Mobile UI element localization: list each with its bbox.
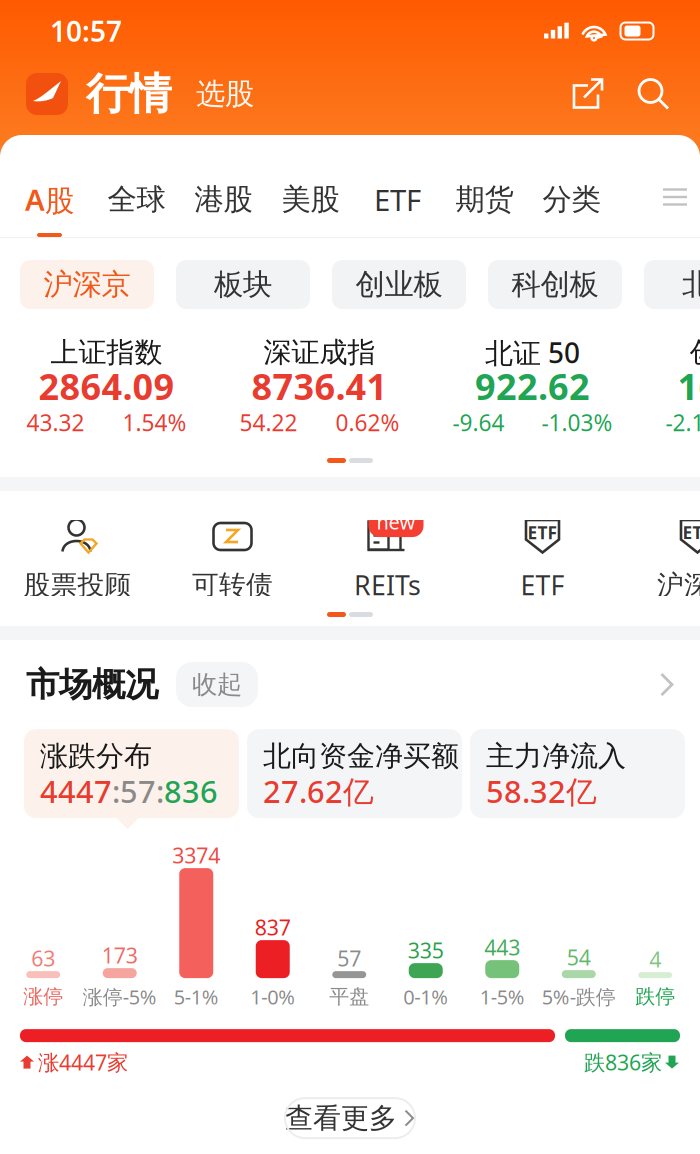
staticText: 5%-跌停	[542, 983, 616, 1010]
staticText: 1.54%	[122, 407, 186, 437]
staticText: 58.32亿	[486, 771, 597, 811]
staticText: 8736.41	[251, 362, 387, 410]
button[interactable]: 股票投顾	[0, 518, 155, 597]
staticText: 美股	[281, 181, 339, 217]
staticText: 创业板指	[689, 335, 700, 370]
staticText: 平盘	[329, 984, 369, 1009]
staticText: ETF	[520, 567, 564, 603]
staticText: 股票投顾	[23, 569, 131, 601]
button[interactable]: 深证成指	[213, 339, 426, 433]
staticText: 期货	[455, 181, 513, 217]
staticText: -1.03%	[541, 407, 612, 437]
staticText: ETF	[374, 180, 421, 219]
staticText: A股	[25, 180, 74, 219]
button[interactable]: new	[310, 518, 465, 597]
staticText: 922.62	[475, 362, 590, 410]
staticText: 0-1%	[403, 983, 448, 1010]
button[interactable]: 上证指数	[0, 339, 213, 433]
staticText: 4	[649, 945, 661, 973]
button[interactable]: 美股	[267, 157, 354, 237]
staticText: 3374	[172, 841, 220, 869]
staticText: 63	[31, 944, 55, 972]
staticText: 173	[102, 941, 138, 969]
button[interactable]: ETF	[465, 518, 620, 597]
staticText: 沪深股	[657, 569, 700, 601]
staticText: 27.62亿	[263, 771, 374, 811]
staticText: 5-1%	[174, 983, 219, 1010]
staticText: 上证指数	[50, 335, 162, 370]
button[interactable]: Search	[605, 77, 670, 110]
staticText: 跌836家	[584, 1048, 662, 1076]
staticText: 科创板	[511, 266, 598, 302]
button[interactable]: Share	[572, 77, 605, 110]
staticText: -9.64	[452, 407, 504, 437]
staticText: 836	[164, 771, 218, 811]
staticText: 2864.09	[38, 362, 174, 410]
staticText: 市场概况	[26, 664, 158, 705]
staticText: 1-5%	[480, 983, 525, 1010]
button[interactable]: 北交	[644, 260, 700, 309]
button[interactable]: 北证 50	[426, 339, 639, 433]
button[interactable]: ETF	[354, 157, 441, 237]
staticText: 涨跌分布	[40, 739, 152, 773]
staticText: REITs	[354, 567, 421, 603]
button[interactable]: 科创板	[488, 260, 622, 309]
button[interactable]: 港股	[180, 157, 267, 237]
staticText: 54	[567, 943, 591, 971]
button[interactable]: 北向资金净买额	[247, 729, 462, 818]
staticText: new	[376, 508, 415, 535]
staticText: 57	[337, 944, 361, 972]
staticText: 10:57	[50, 12, 122, 50]
staticText: 1629.87	[677, 362, 700, 410]
staticText: 收起	[192, 669, 242, 700]
staticText: 4447	[40, 771, 112, 811]
staticText: :57:	[112, 771, 164, 811]
button[interactable]: 分类	[528, 157, 615, 237]
button[interactable]: 期货	[441, 157, 528, 237]
staticText: 深证成指	[263, 335, 375, 370]
staticText: 分类	[542, 181, 600, 217]
button[interactable]: 创业板	[332, 260, 466, 309]
button[interactable]: 收起	[158, 662, 258, 707]
staticText: ETF	[527, 521, 557, 544]
staticText: 涨停	[23, 984, 63, 1009]
button[interactable]: ETF	[620, 518, 700, 597]
staticText: 主力净流入	[486, 739, 626, 773]
staticText: 可转债	[192, 569, 273, 601]
button[interactable]: 板块	[176, 260, 310, 309]
staticText: 北交	[682, 266, 700, 302]
button[interactable]: 可转债	[155, 518, 310, 597]
button[interactable]: 涨跌分布	[24, 729, 239, 818]
staticText: 涨4447家	[38, 1048, 128, 1076]
button[interactable]: 沪深京	[20, 260, 154, 309]
staticText: 443	[484, 933, 520, 961]
staticText: 跌停	[635, 984, 675, 1009]
button[interactable]: 查看更多	[285, 1098, 415, 1138]
staticText: 涨停-5%	[83, 983, 157, 1010]
staticText: 335	[408, 936, 444, 964]
button[interactable]: 主力净流入	[470, 729, 685, 818]
staticText: 港股	[194, 181, 252, 217]
staticText: 43.32	[26, 407, 84, 437]
staticText: 0.62%	[335, 407, 399, 437]
button[interactable]: All categories	[651, 157, 700, 237]
staticText: 1-0%	[250, 983, 295, 1010]
staticText: 板块	[214, 266, 272, 302]
staticText: 54.22	[239, 407, 297, 437]
button[interactable]: Expand market overview	[660, 673, 674, 697]
staticText: ETF	[682, 521, 700, 544]
staticText: 行情	[86, 68, 172, 120]
staticText: 837	[255, 913, 291, 941]
staticText: 创业板	[355, 266, 442, 302]
button[interactable]: 全球	[93, 157, 180, 237]
button[interactable]: A股	[6, 157, 93, 237]
button[interactable]: 创业板指	[639, 339, 700, 433]
staticText: 选股	[196, 76, 254, 112]
staticText: 沪深京	[43, 266, 130, 302]
staticText: 北向资金净买额	[263, 739, 459, 773]
staticText: -2.1	[665, 407, 700, 437]
staticText: 北证 50	[485, 334, 580, 371]
staticText: 全球	[107, 181, 165, 217]
staticText: 查看更多	[285, 1101, 397, 1135]
